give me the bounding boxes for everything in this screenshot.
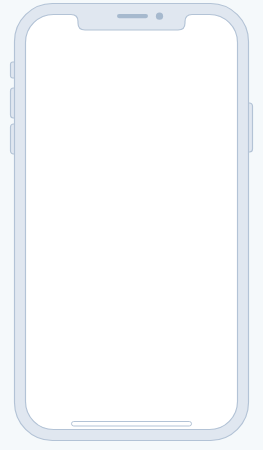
other: Phone device illustration: [0, 0, 263, 450]
